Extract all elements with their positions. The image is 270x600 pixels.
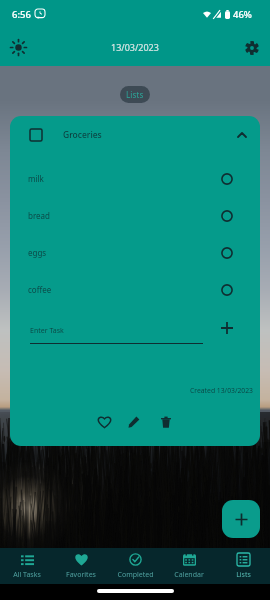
staticText: coffee [28,284,52,295]
staticText: bread [28,210,50,221]
button[interactable]: Lists [216,548,270,584]
button[interactable]: Completed [108,548,162,584]
staticText: Calendar [174,570,204,580]
staticText: Enter Task [30,326,64,336]
staticText: 6:56 [12,8,31,21]
button[interactable]: Settings [244,40,259,55]
staticText: 46% [233,8,252,21]
button[interactable]: Add task [215,316,239,340]
staticText: Groceries [63,129,102,141]
staticText: Lists [126,89,144,100]
button[interactable]: Lists [120,86,150,103]
staticText: Completed [117,570,154,580]
staticText: Created 13/03/2023 [190,386,254,395]
staticText: milk [28,173,44,184]
button[interactable]: eggs [10,234,260,271]
button[interactable]: milk [10,160,260,197]
button[interactable]: Favorites [54,548,108,584]
staticText: All Tasks [13,570,41,580]
button[interactable]: Delete [154,410,178,434]
button[interactable]: Favorite [92,410,116,434]
button[interactable]: Calendar [162,548,216,584]
button[interactable]: bread [10,197,260,234]
staticText: 13/03/2023 [111,41,159,53]
staticText: Lists [236,570,251,580]
button[interactable]: Add list [222,500,260,538]
staticText: Favorites [66,570,96,580]
button[interactable]: Groceries [10,116,260,153]
button[interactable]: All Tasks [0,548,54,584]
button[interactable]: Theme [10,39,27,56]
button[interactable]: coffee [10,271,260,308]
staticText: eggs [28,247,47,258]
button[interactable]: Edit [122,410,146,434]
